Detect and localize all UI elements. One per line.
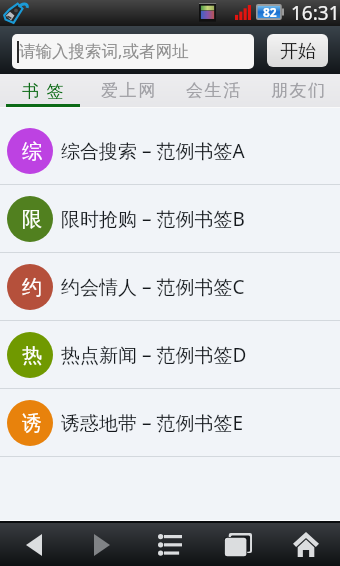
button[interactable]: 综 <box>0 117 340 184</box>
button[interactable]: 热 <box>0 321 340 388</box>
staticText: 限 <box>22 207 42 232</box>
button[interactable]: 限 <box>0 185 340 252</box>
button[interactable]: 诱 <box>0 389 340 456</box>
button[interactable]: 请输入搜索词,或者网址 <box>12 34 254 69</box>
button[interactable]: 爱上网 <box>85 74 170 108</box>
staticText: 开始 <box>280 40 316 63</box>
staticText: 限时抢购 – 范例书签B <box>61 206 245 232</box>
staticText: 诱惑地带 – 范例书签E <box>61 410 243 436</box>
staticText: 书 签 <box>22 79 66 102</box>
button[interactable]: Home <box>272 523 340 566</box>
staticText: 82 <box>263 4 277 20</box>
staticText: 爱上网 <box>101 80 157 101</box>
staticText: 诱 <box>22 411 42 436</box>
staticText: 会生活 <box>186 80 242 101</box>
button[interactable]: 书 签 <box>0 74 85 108</box>
button[interactable]: 开始 <box>267 34 328 67</box>
staticText: 朋友们 <box>271 80 327 101</box>
staticText: 综 <box>22 139 42 164</box>
staticText: 请输入搜索词,或者网址 <box>19 39 189 62</box>
staticText: 综合搜索 – 范例书签A <box>61 138 245 164</box>
button[interactable]: 会生活 <box>170 74 255 108</box>
button[interactable]: 约 <box>0 253 340 320</box>
staticText: 16:31 <box>291 0 340 26</box>
staticText: 约 <box>22 275 42 300</box>
button[interactable]: Menu <box>136 523 204 566</box>
staticText: 约会情人 – 范例书签C <box>61 274 245 300</box>
button[interactable]: Recents <box>204 523 272 566</box>
staticText: 热 <box>22 343 42 368</box>
button[interactable]: Forward <box>68 523 136 566</box>
staticText: 热点新闻 – 范例书签D <box>61 342 247 368</box>
button[interactable]: Back <box>0 523 68 566</box>
button[interactable]: 朋友们 <box>255 74 340 108</box>
